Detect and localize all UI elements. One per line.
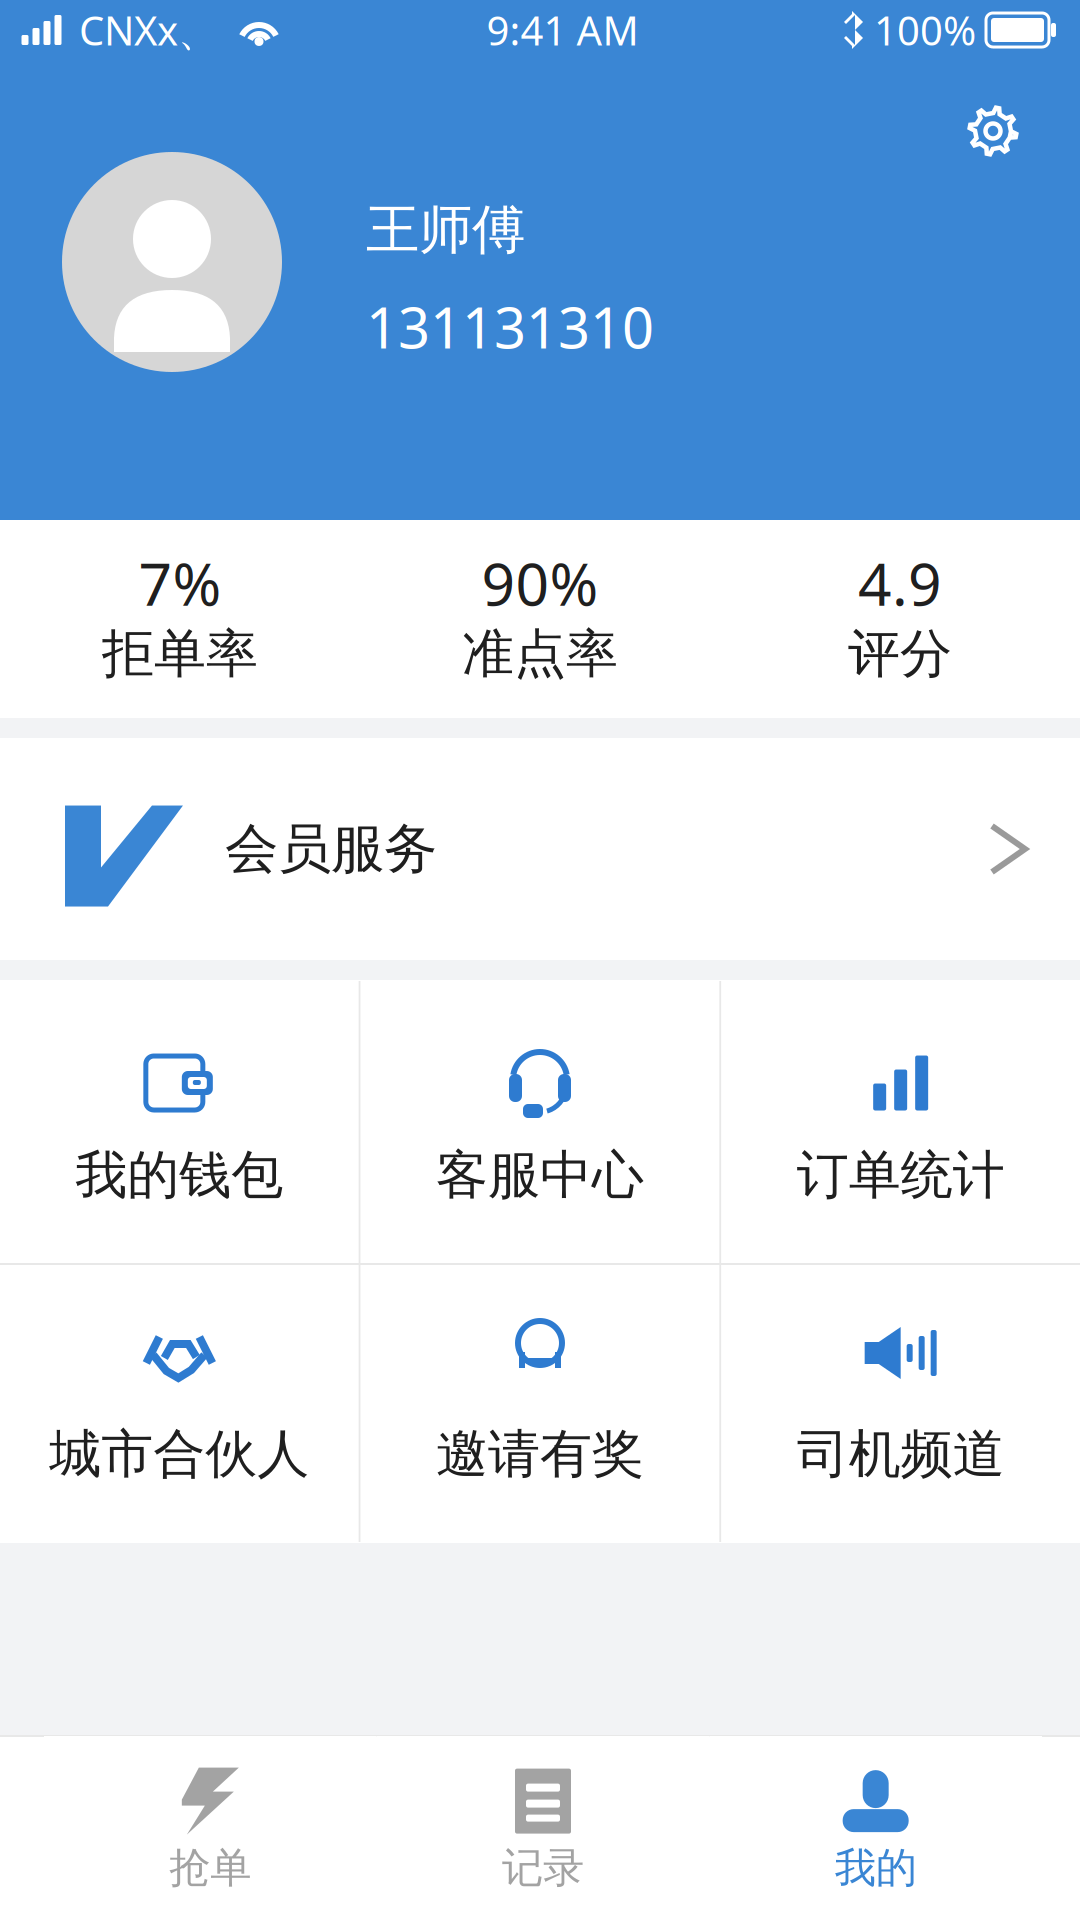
- staticText: 王师傅: [366, 197, 525, 262]
- button[interactable]: 我的钱包: [0, 981, 359, 1263]
- staticText: 司机频道: [797, 1422, 1005, 1486]
- staticText: 邀请有奖: [436, 1422, 644, 1486]
- staticText: 9:41 AM: [486, 3, 638, 56]
- staticText: 评分: [848, 622, 952, 686]
- staticText: 我的: [835, 1843, 917, 1893]
- staticText: 131131310: [366, 289, 654, 364]
- button[interactable]: 设置: [944, 82, 1042, 180]
- staticText: 会员服务: [225, 816, 437, 882]
- staticText: 抢单: [169, 1843, 251, 1893]
- staticText: CNXx、: [79, 3, 218, 57]
- staticText: 城市合伙人: [49, 1422, 309, 1486]
- staticText: 客服中心: [436, 1143, 644, 1207]
- button[interactable]: 司机频道: [721, 1265, 1080, 1542]
- button[interactable]: 记录: [377, 1736, 709, 1920]
- button[interactable]: 我的: [709, 1736, 1042, 1920]
- button[interactable]: 订单统计: [721, 981, 1080, 1263]
- button[interactable]: 邀请有奖: [361, 1265, 719, 1542]
- staticText: 准点率: [462, 622, 618, 686]
- staticText: 7%: [138, 544, 221, 622]
- button[interactable]: 客服中心: [361, 981, 719, 1263]
- staticText: 记录: [502, 1843, 584, 1893]
- staticText: 100%: [874, 3, 976, 56]
- staticText: 订单统计: [797, 1143, 1005, 1207]
- staticText: 4.9: [858, 544, 942, 622]
- button[interactable]: 城市合伙人: [0, 1265, 359, 1542]
- staticText: 拒单率: [102, 622, 258, 686]
- staticText: 我的钱包: [75, 1143, 283, 1207]
- button[interactable]: 抢单: [44, 1736, 377, 1920]
- staticText: 90%: [481, 544, 598, 622]
- button[interactable]: 会员服务: [0, 738, 1080, 960]
